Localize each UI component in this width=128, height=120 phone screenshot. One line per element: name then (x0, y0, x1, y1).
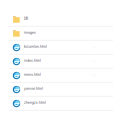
staticText: images (24, 31, 36, 35)
button[interactable]: index.html (0, 55, 128, 69)
button[interactable]: images (0, 27, 128, 41)
button[interactable]: menu.html (0, 69, 128, 83)
button[interactable]: DB (0, 13, 128, 27)
button[interactable]: zhengzx.html (0, 97, 128, 111)
staticText: zhengzx.html (24, 101, 46, 105)
staticText: menu.html (24, 73, 41, 77)
staticText: yanvar.html (24, 87, 43, 91)
button[interactable]: bizumlan.html (0, 41, 128, 55)
button[interactable]: yanvar.html (0, 83, 128, 97)
staticText: DB (24, 17, 28, 21)
staticText: bizumlan.html (24, 45, 47, 49)
staticText: index.html (24, 59, 41, 63)
